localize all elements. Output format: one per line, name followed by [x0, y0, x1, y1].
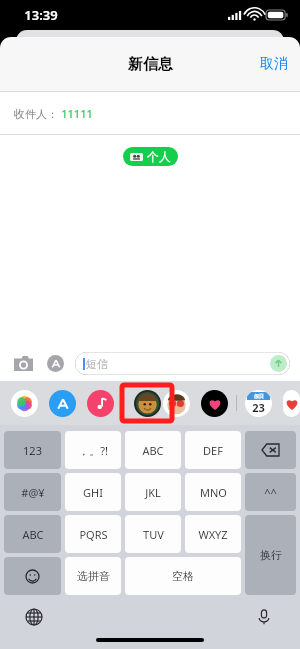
button[interactable]: Delete	[245, 431, 296, 469]
button[interactable]: App icon 1	[49, 390, 76, 417]
staticText: 个人	[147, 149, 171, 164]
staticText: 新信息	[128, 55, 173, 74]
button[interactable]: App icon 4	[163, 390, 190, 417]
button[interactable]: #@¥	[4, 473, 61, 511]
button[interactable]: ABC	[4, 515, 61, 553]
staticText: JKL	[145, 485, 161, 500]
button[interactable]: App icon 2	[87, 390, 114, 417]
staticText: 短信	[86, 357, 108, 371]
button[interactable]: WXYZ	[185, 515, 241, 553]
button[interactable]: PQRS	[65, 515, 121, 553]
staticText: GHI	[83, 485, 103, 500]
button[interactable]: 123	[4, 431, 61, 469]
staticText: #@¥	[21, 485, 45, 500]
staticText: TUV	[143, 527, 164, 542]
button[interactable]: MNO	[185, 473, 241, 511]
button[interactable]: GHI	[65, 473, 121, 511]
staticText: 取消	[260, 55, 288, 73]
staticText: 假日	[254, 393, 264, 399]
button[interactable]: 空格	[125, 557, 241, 595]
button[interactable]: 选拼音	[65, 557, 121, 595]
staticText: 11111	[61, 106, 93, 121]
button[interactable]: 收件人：	[0, 92, 300, 134]
button[interactable]: ^^	[245, 473, 296, 511]
button[interactable]: Send	[270, 355, 287, 372]
button[interactable]: Emoji	[4, 557, 61, 595]
button[interactable]: App icon 7	[283, 390, 300, 417]
button[interactable]: App icon 3	[134, 390, 161, 417]
button[interactable]: ABC	[125, 431, 181, 469]
button[interactable]: TUV	[125, 515, 181, 553]
button[interactable]: App icon 6	[245, 390, 272, 417]
staticText: 23	[252, 400, 265, 415]
staticText: DEF	[203, 443, 223, 458]
staticText: 13:39	[24, 6, 58, 24]
staticText: ，。?!	[78, 443, 108, 458]
staticText: ^^	[264, 485, 277, 500]
staticText: ABC	[142, 443, 164, 458]
button[interactable]: ，。?!	[65, 431, 121, 469]
staticText: 123	[23, 443, 42, 458]
button[interactable]: Memoji sticker	[122, 385, 172, 421]
staticText: WXYZ	[198, 527, 228, 542]
staticText: 收件人：	[14, 107, 58, 121]
staticText: 选拼音	[77, 569, 110, 583]
button[interactable]: 个人	[123, 147, 178, 166]
button[interactable]: JKL	[125, 473, 181, 511]
button[interactable]: App icon 5	[201, 390, 228, 417]
button[interactable]: Camera	[10, 350, 36, 376]
staticText: 空格	[172, 569, 194, 583]
staticText: MNO	[200, 485, 227, 500]
staticText: PQRS	[79, 527, 108, 542]
button[interactable]: 短信	[75, 352, 290, 375]
button[interactable]: App Store	[42, 350, 68, 376]
button[interactable]: 换行	[245, 515, 296, 595]
button[interactable]: 取消	[248, 46, 300, 82]
staticText: ABC	[22, 527, 44, 542]
button[interactable]: DEF	[185, 431, 241, 469]
button[interactable]: App icon 0	[11, 390, 38, 417]
staticText: 换行	[260, 548, 282, 562]
button[interactable]: Switch keyboard	[23, 606, 45, 628]
button[interactable]: Dictation	[253, 606, 275, 628]
